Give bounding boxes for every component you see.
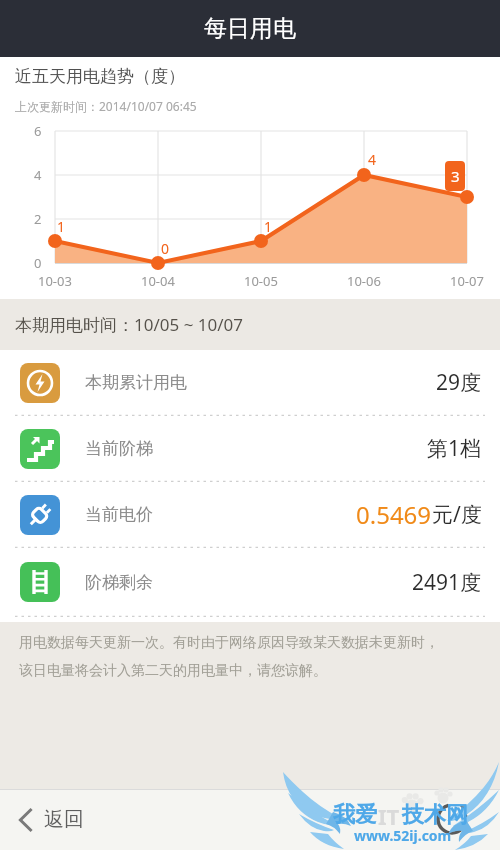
staticText: 近五天用电趋势（度）	[15, 66, 185, 87]
staticText: 10-05	[244, 272, 278, 290]
staticText: 0	[161, 239, 170, 258]
staticText: 本期累计用电	[85, 372, 187, 393]
staticText: 29度	[436, 368, 482, 397]
staticText: 10-03	[38, 272, 72, 290]
staticText: 4	[368, 150, 377, 169]
button[interactable]: 当前电价	[0, 482, 500, 547]
staticText: 2	[34, 210, 42, 228]
staticText: 0	[34, 254, 42, 272]
button[interactable]: 本期累计用电	[0, 350, 500, 415]
button[interactable]: 当前阶梯	[0, 416, 500, 481]
staticText: www.52ij.com	[354, 826, 452, 845]
staticText: 3	[451, 166, 460, 186]
staticText: 第1档	[427, 434, 482, 463]
staticText: 4	[34, 166, 42, 184]
staticText: 技术网	[402, 801, 468, 829]
staticText: 1	[264, 217, 273, 236]
button[interactable]: 阶梯剩余	[0, 548, 500, 616]
staticText: 我爱	[333, 801, 377, 829]
staticText: 10-06	[347, 272, 381, 290]
staticText: 返回	[44, 807, 84, 832]
staticText: 10-04	[141, 272, 175, 290]
staticText: 1	[57, 217, 66, 236]
staticText: 当前电价	[85, 504, 153, 525]
staticText: 该日电量将会计入第二天的用电量中，请您谅解。	[19, 662, 327, 680]
staticText: 上次更新时间：2014/10/07 06:45	[15, 98, 197, 114]
staticText: 2491度	[412, 568, 482, 597]
staticText: 用电数据每天更新一次。有时由于网络原因导致某天数据未更新时，	[19, 634, 439, 652]
staticText: 0.5469	[356, 498, 432, 531]
staticText: 本期用电时间：10/05 ~ 10/07	[15, 313, 244, 336]
staticText: 6	[34, 122, 42, 140]
staticText: 当前阶梯	[85, 438, 153, 459]
staticText: 元/度	[432, 500, 482, 529]
staticText: 阶梯剩余	[85, 572, 153, 593]
staticText: 10-07	[450, 272, 484, 290]
button[interactable]: 返回	[0, 797, 104, 842]
staticText: IT	[378, 801, 400, 831]
staticText: 每日用电	[204, 14, 296, 43]
